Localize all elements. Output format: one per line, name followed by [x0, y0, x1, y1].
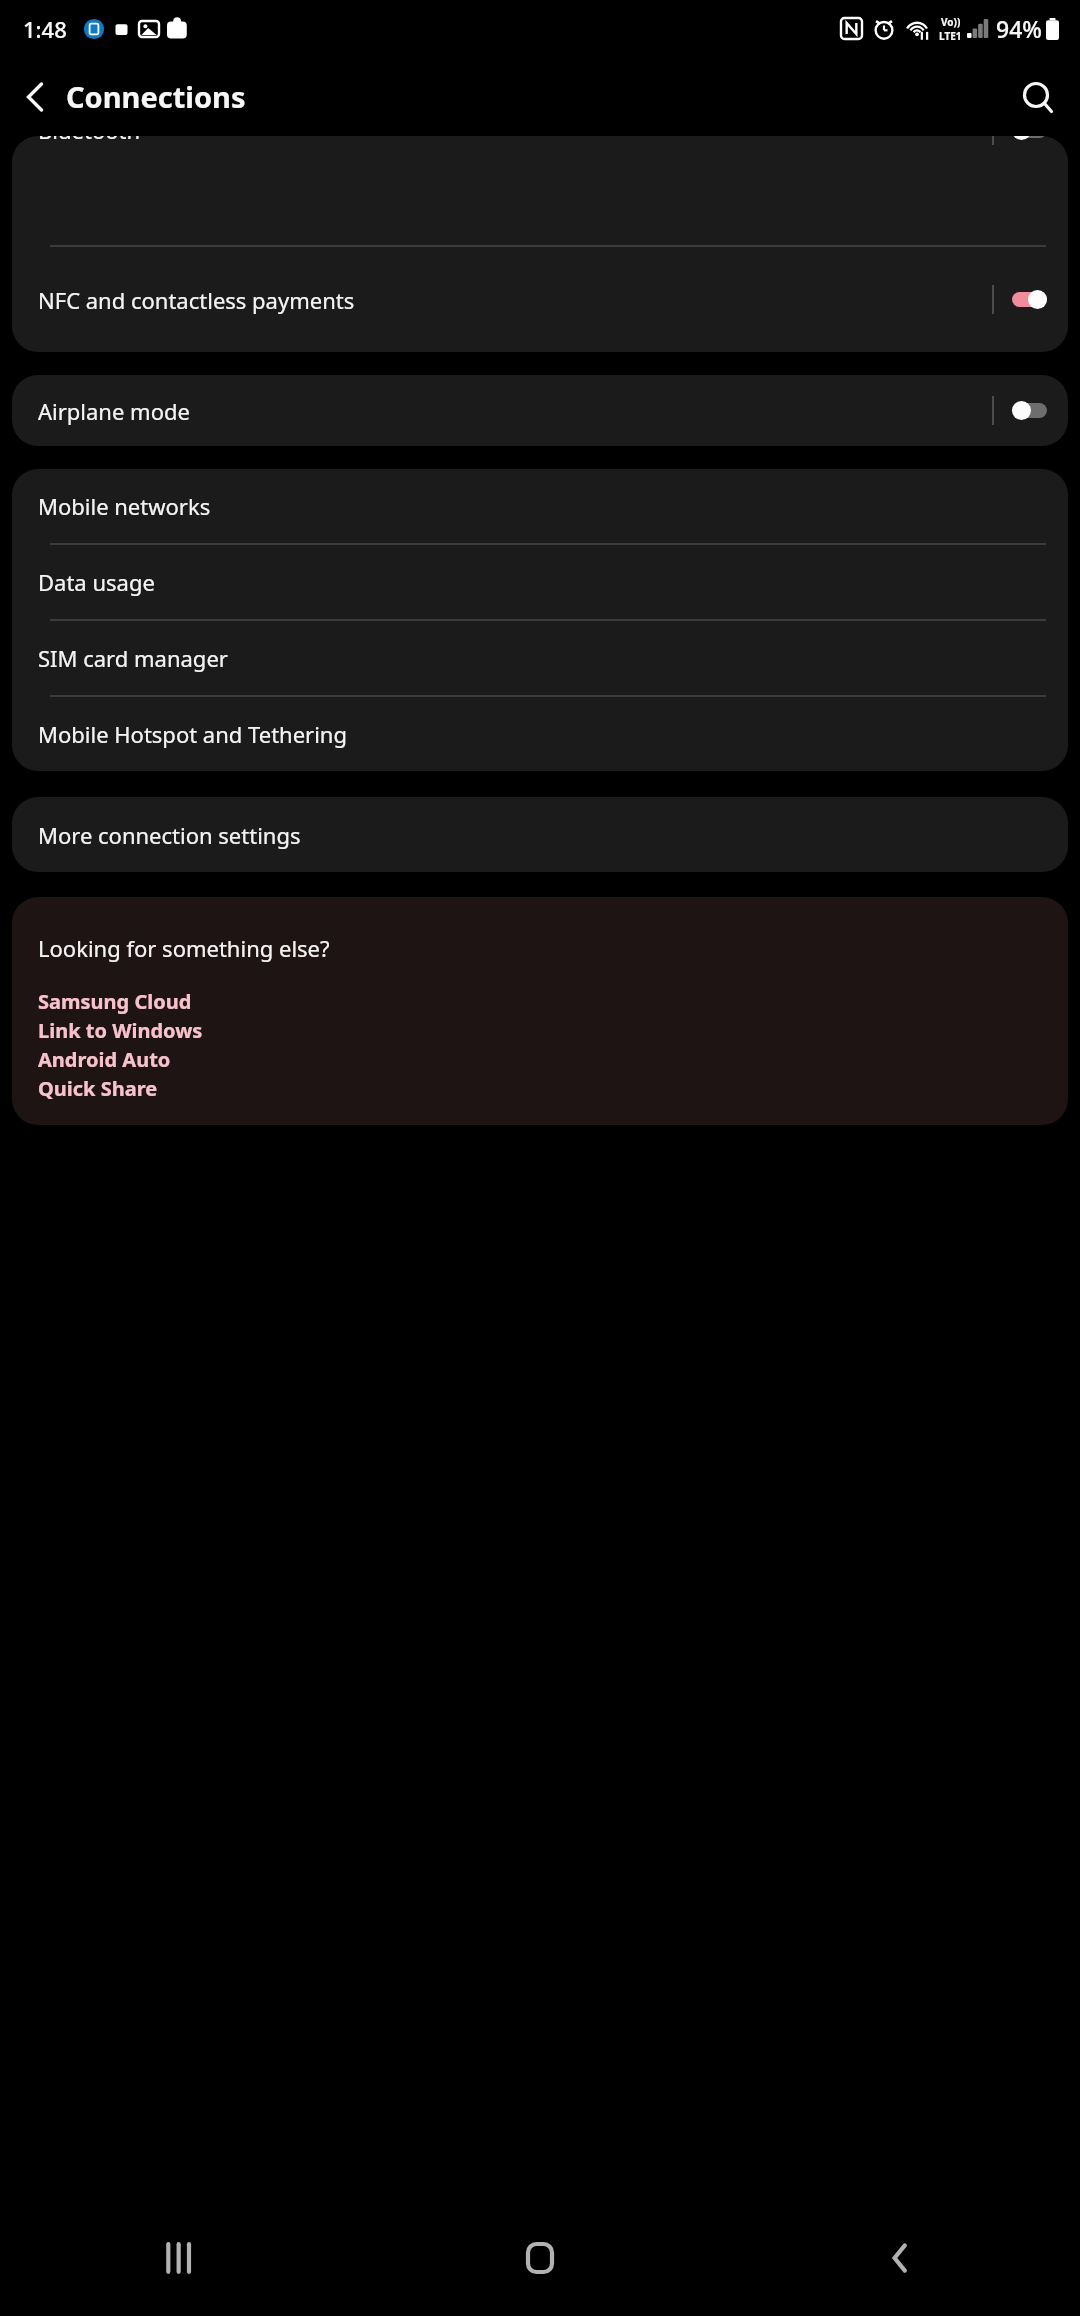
- staticText: Android Auto: [38, 1046, 171, 1073]
- button[interactable]: Samsung Cloud: [12, 987, 1068, 1016]
- staticText: Vo)): [941, 15, 961, 29]
- staticText: 1:48: [23, 14, 67, 44]
- staticText: Looking for something else?: [38, 933, 330, 963]
- button[interactable]: Quick Share: [12, 1074, 1068, 1103]
- staticText: LTE1: [939, 29, 962, 43]
- button[interactable]: Turn on: [1012, 401, 1047, 420]
- button[interactable]: More connection settings: [12, 797, 1068, 872]
- button[interactable]: Mobile networks: [12, 469, 1068, 543]
- button[interactable]: SIM card manager: [12, 621, 1068, 695]
- button[interactable]: Mobile Hotspot and Tethering: [12, 697, 1068, 771]
- button[interactable]: Recents: [0, 2199, 360, 2316]
- staticText: Samsung Cloud: [38, 988, 192, 1015]
- button[interactable]: Back: [720, 2199, 1080, 2316]
- button[interactable]: NFC and contactless payments: [12, 247, 1068, 352]
- button[interactable]: Link to Windows: [12, 1016, 1068, 1045]
- button[interactable]: Navigate up: [7, 69, 63, 125]
- staticText: Bluetooth: [38, 136, 992, 145]
- staticText: Mobile networks: [38, 491, 211, 521]
- staticText: Data usage: [38, 567, 155, 597]
- staticText: Connections: [66, 77, 246, 116]
- button[interactable]: Data usage: [12, 545, 1068, 619]
- staticText: More connection settings: [38, 820, 301, 850]
- staticText: Mobile Hotspot and Tethering: [38, 719, 347, 749]
- button[interactable]: Airplane mode: [12, 375, 1068, 446]
- staticText: Quick Share: [38, 1075, 158, 1102]
- button[interactable]: Bluetooth: [12, 136, 1068, 167]
- staticText: SIM card manager: [38, 643, 228, 673]
- staticText: NFC and contactless payments: [38, 285, 992, 315]
- button[interactable]: Turn off: [1012, 290, 1047, 309]
- staticText: Airplane mode: [38, 396, 992, 426]
- button[interactable]: Android Auto: [12, 1045, 1068, 1074]
- button[interactable]: Turn on: [1012, 136, 1047, 140]
- button[interactable]: Home: [360, 2199, 720, 2316]
- staticText: Link to Windows: [38, 1017, 203, 1044]
- button[interactable]: Search: [1009, 69, 1065, 125]
- staticText: 94%: [996, 13, 1042, 44]
